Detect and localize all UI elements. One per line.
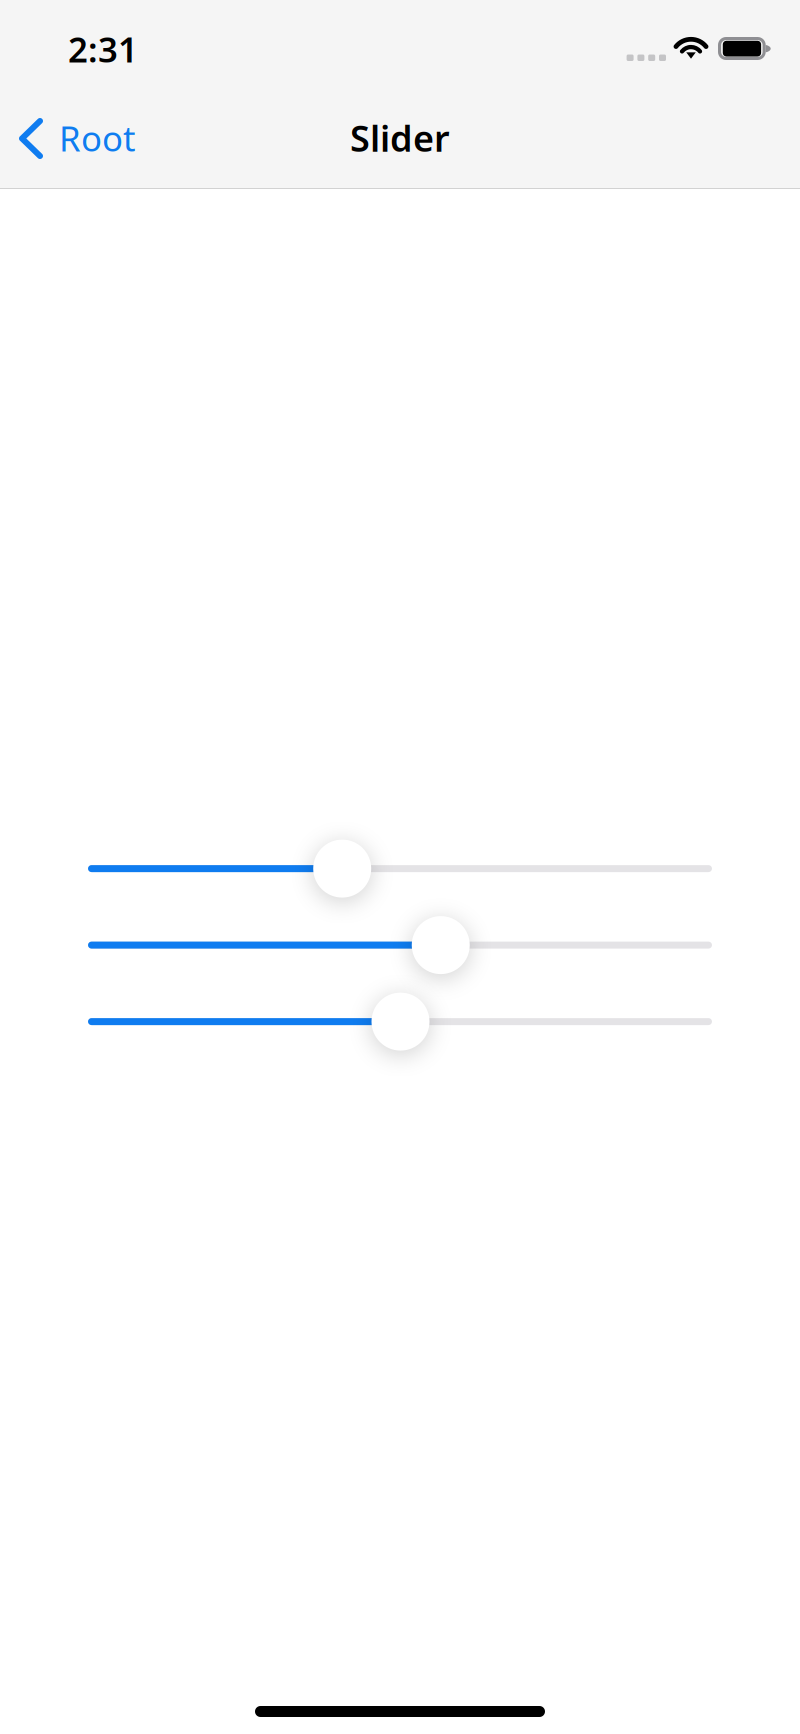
button[interactable]: Back to Root bbox=[0, 96, 152, 188]
button[interactable]: Slider 1 bbox=[88, 840, 712, 898]
staticText: Slider bbox=[350, 114, 450, 162]
button[interactable]: Slider 2 bbox=[88, 916, 712, 974]
button[interactable]: Slider 3 bbox=[88, 993, 712, 1051]
staticText: Root bbox=[59, 115, 136, 161]
staticText: 2:31 bbox=[68, 26, 138, 72]
